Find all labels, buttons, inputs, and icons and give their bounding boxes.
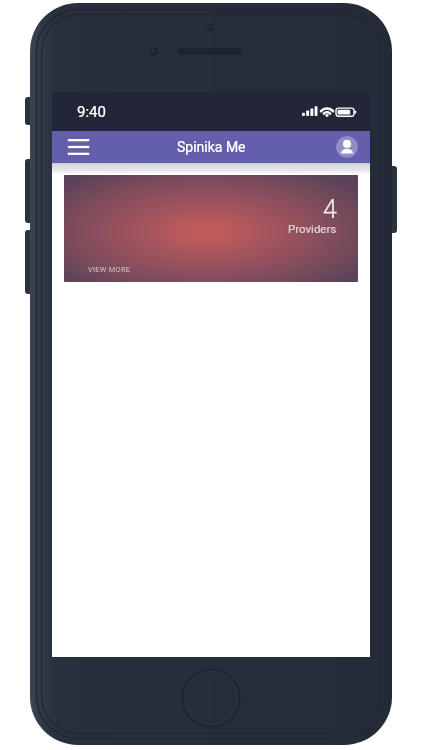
- staticText: 4: [323, 195, 337, 224]
- staticText: VIEW MORE: [88, 265, 131, 274]
- staticText: 9:40: [77, 103, 106, 121]
- button[interactable]: Account: [336, 136, 358, 158]
- button[interactable]: Open navigation menu: [52, 131, 104, 163]
- staticText: Providers: [288, 222, 337, 235]
- button[interactable]: 4: [64, 175, 358, 282]
- staticText: Spinika Me: [177, 139, 246, 155]
